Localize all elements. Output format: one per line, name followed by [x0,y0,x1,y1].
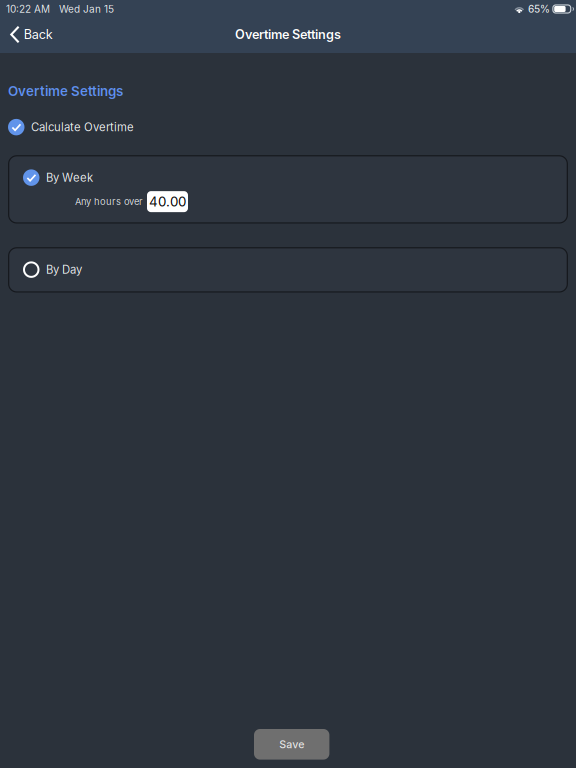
staticText: Overtime Settings [235,27,341,42]
staticText: Overtime Settings [8,83,123,99]
staticText: Calculate Overtime [31,120,134,134]
staticText: 10:22 AM [6,3,50,15]
button[interactable]: Back [0,22,63,47]
button[interactable]: By Week [8,155,568,224]
staticText: Back [24,27,53,42]
staticText: Wed Jan 15 [59,3,114,15]
staticText: Any hours over [75,196,143,207]
button[interactable]: By Day [8,247,568,293]
button[interactable]: Calculate Overtime [0,99,576,139]
button[interactable]: Save [254,729,329,760]
staticText: By Day [46,263,82,276]
staticText: 65% [528,3,550,15]
staticText: By Week [46,171,93,184]
staticText: 40.00 [149,194,186,210]
staticText: Save [279,738,304,751]
